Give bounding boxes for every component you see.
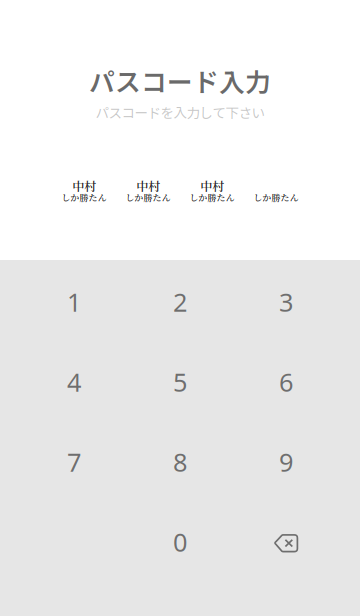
staticText: 5 <box>173 365 187 399</box>
staticText: パスコード入力 <box>89 62 271 99</box>
button[interactable]: 1 <box>21 262 127 342</box>
staticText: 8 <box>173 445 187 479</box>
staticText: 中村 <box>264 177 288 195</box>
button[interactable]: 6 <box>233 342 339 422</box>
button[interactable]: 3 <box>233 262 339 342</box>
staticText: 中村 <box>136 177 160 195</box>
staticText: 7 <box>67 445 81 479</box>
button[interactable]: 7 <box>21 422 127 502</box>
button[interactable]: 0 <box>127 502 233 582</box>
staticText: しか勝たん <box>253 191 298 204</box>
staticText: しか勝たん <box>125 191 170 204</box>
button[interactable]: 9 <box>233 422 339 502</box>
button[interactable]: 2 <box>127 262 233 342</box>
staticText: 2 <box>173 285 187 319</box>
staticText: しか勝たん <box>189 191 234 204</box>
staticText: パスコードを入力して下さい <box>95 102 264 122</box>
staticText: 1 <box>67 285 81 319</box>
button[interactable]: 5 <box>127 342 233 422</box>
staticText: 6 <box>279 365 293 399</box>
staticText: 3 <box>279 285 293 319</box>
staticText: 0 <box>173 525 187 559</box>
staticText: 中村 <box>72 177 96 195</box>
button[interactable]: 8 <box>127 422 233 502</box>
button[interactable]: 4 <box>21 342 127 422</box>
staticText: 4 <box>67 365 81 399</box>
button[interactable]: Delete <box>233 502 339 582</box>
staticText: 中村 <box>200 177 224 195</box>
staticText: しか勝たん <box>61 191 106 204</box>
staticText: 9 <box>279 445 293 479</box>
